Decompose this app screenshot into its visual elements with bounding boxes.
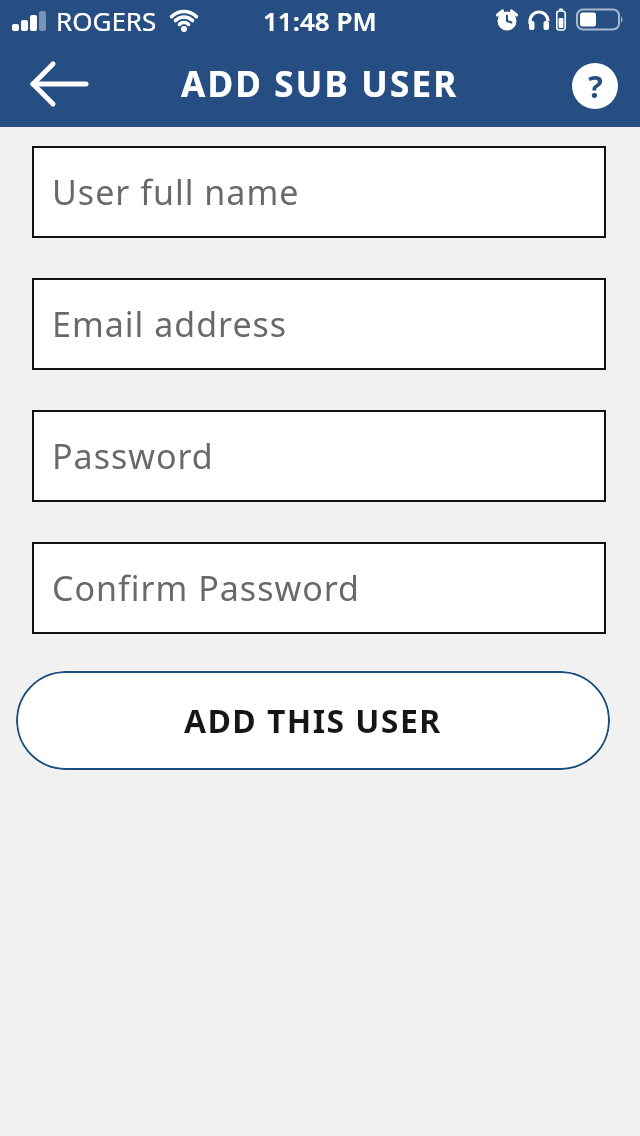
button[interactable]: Password xyxy=(32,410,606,502)
staticText: Email address xyxy=(52,301,288,347)
button[interactable]: Confirm Password xyxy=(32,542,606,634)
button[interactable] xyxy=(20,49,100,119)
staticText: User full name xyxy=(52,169,300,215)
button[interactable]: ? xyxy=(572,63,618,109)
button[interactable]: Email address xyxy=(32,278,606,370)
button[interactable]: ADD THIS USER xyxy=(16,671,610,770)
staticText: 11:48 PM xyxy=(263,3,377,38)
staticText: Password xyxy=(52,433,214,479)
staticText: ROGERS xyxy=(56,3,157,38)
staticText: ? xyxy=(588,65,603,107)
staticText: ADD THIS USER xyxy=(184,699,442,743)
staticText: Confirm Password xyxy=(52,565,360,611)
staticText: ADD SUB USER xyxy=(181,60,459,108)
button[interactable]: User full name xyxy=(32,146,606,238)
